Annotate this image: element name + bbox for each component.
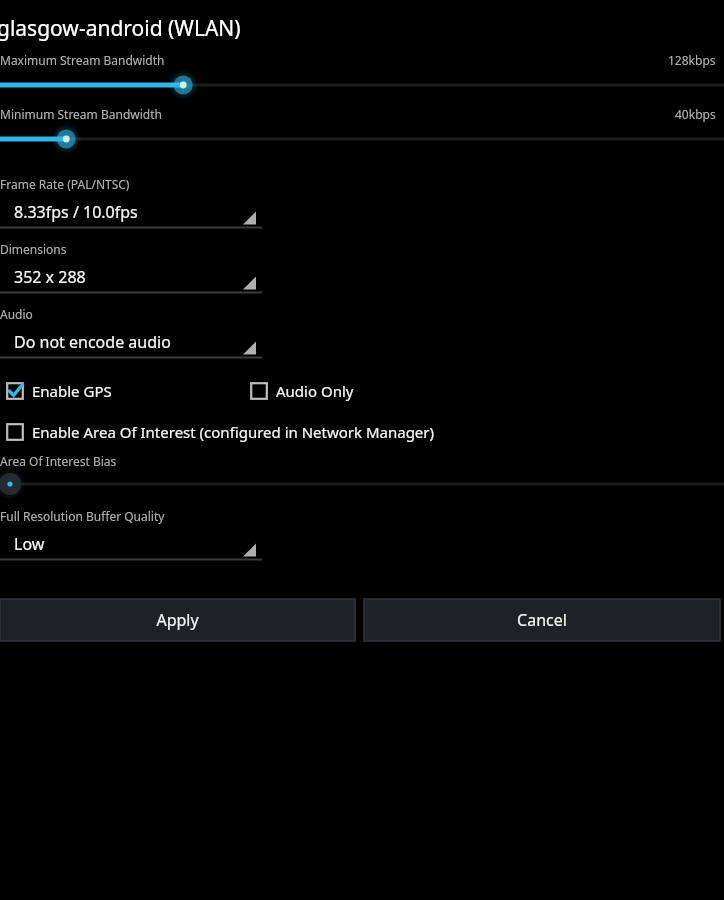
staticText: Enable GPS <box>32 381 112 401</box>
button[interactable]: Enable GPS <box>6 379 112 403</box>
button[interactable]: Low <box>0 529 262 561</box>
staticText: Area Of Interest Bias <box>0 453 117 469</box>
staticText: 352 x 288 <box>14 266 86 288</box>
staticText: Do not encode audio <box>14 331 171 353</box>
staticText: 40kbps <box>675 106 716 122</box>
button[interactable]: Slider <box>0 66 724 104</box>
button[interactable]: Do not encode audio <box>0 327 262 359</box>
staticText: Maximum Stream Bandwidth <box>0 52 668 68</box>
staticText: Audio <box>0 306 33 322</box>
staticText: Full Resolution Buffer Quality <box>0 508 165 524</box>
staticText: Low <box>14 533 45 555</box>
staticText: 128kbps <box>668 52 716 68</box>
staticText: Audio Only <box>276 381 354 401</box>
staticText: Frame Rate (PAL/NTSC) <box>0 176 130 192</box>
button[interactable]: 352 x 288 <box>0 262 262 294</box>
button[interactable]: Cancel <box>364 599 720 641</box>
button[interactable]: Audio Only <box>250 379 354 403</box>
staticText: 8.33fps / 10.0fps <box>14 201 138 223</box>
button[interactable]: Slider <box>0 465 724 503</box>
button[interactable]: 8.33fps / 10.0fps <box>0 197 262 229</box>
staticText: Enable Area Of Interest (configured in N… <box>32 422 435 442</box>
button[interactable]: Slider <box>0 120 724 158</box>
staticText: Apply <box>156 609 199 631</box>
staticText: glasgow-android (WLAN) <box>0 14 241 43</box>
staticText: Dimensions <box>0 241 67 257</box>
staticText: Minimum Stream Bandwidth <box>0 106 675 122</box>
button[interactable]: Enable Area Of Interest (configured in N… <box>6 420 435 444</box>
staticText: Cancel <box>517 609 567 631</box>
button[interactable]: Apply <box>0 599 355 641</box>
